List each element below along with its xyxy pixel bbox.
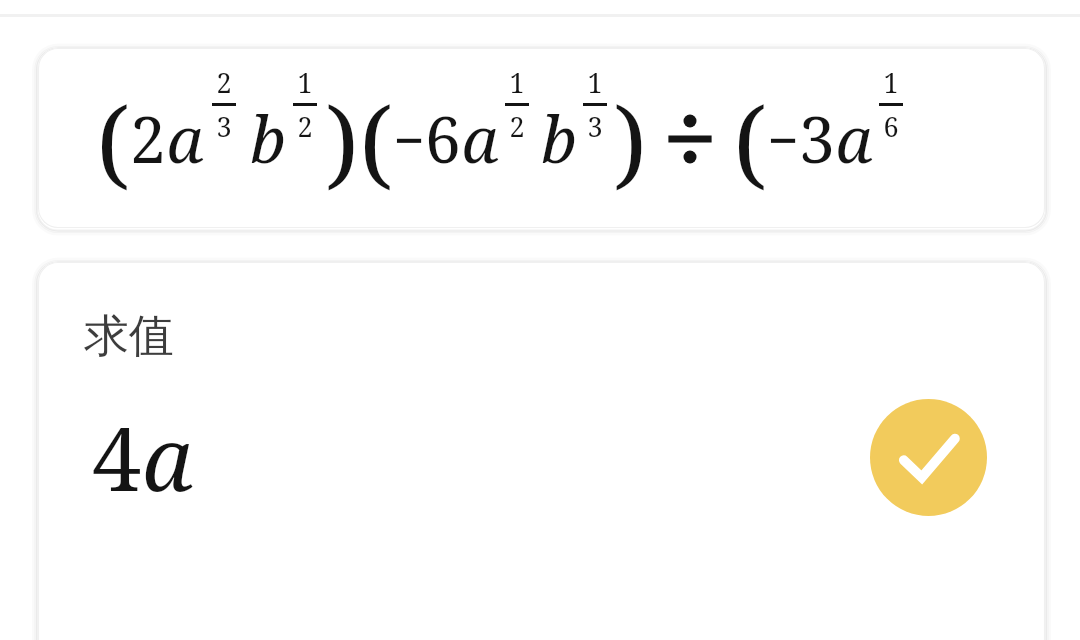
staticText: 4 <box>92 397 142 517</box>
staticText: ) <box>613 75 647 206</box>
staticText: ) <box>325 75 359 206</box>
staticText: − <box>393 102 425 176</box>
staticText: 2 <box>509 108 525 145</box>
staticText: a <box>142 397 193 517</box>
staticText: 3 <box>587 108 603 145</box>
staticText: 1 <box>509 64 525 101</box>
button[interactable]: ( <box>38 48 1045 228</box>
staticText: 3 <box>799 95 835 182</box>
staticText: 6 <box>883 108 899 145</box>
staticText: 2 <box>297 108 313 145</box>
staticText: 6 <box>425 95 461 182</box>
staticText: 1 <box>297 64 313 101</box>
staticText: 2 <box>130 95 166 182</box>
staticText: 求值 <box>84 308 174 365</box>
staticText: b <box>250 95 286 182</box>
staticText: − <box>767 102 799 176</box>
staticText: ( <box>733 75 767 206</box>
staticText: b <box>541 95 577 182</box>
staticText: 3 <box>216 108 232 145</box>
staticText: ( <box>96 75 130 206</box>
staticText: 1 <box>587 64 603 101</box>
staticText: a <box>835 95 873 182</box>
staticText: 1 <box>883 64 899 101</box>
button[interactable]: Answer is correct <box>870 399 987 516</box>
staticText: 2 <box>216 64 232 101</box>
staticText: a <box>461 95 499 182</box>
staticText: a <box>166 95 204 182</box>
button[interactable]: 求值 <box>38 262 1045 640</box>
staticText: ( <box>359 75 393 206</box>
